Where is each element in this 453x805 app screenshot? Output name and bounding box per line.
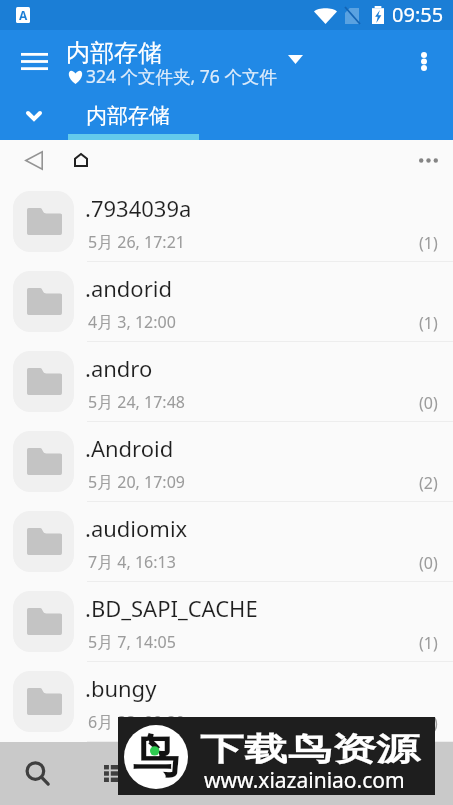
staticText: .andorid xyxy=(85,273,172,303)
staticText: 4月 3, 12:00 xyxy=(88,311,176,333)
staticText: .7934039a xyxy=(85,193,192,223)
staticText: A xyxy=(19,7,28,23)
button[interactable]: .audiomix xyxy=(0,501,453,581)
button[interactable]: .BD_SAPI_CACHE xyxy=(0,581,453,661)
staticText: (1) xyxy=(419,312,438,334)
staticText: 5月 24, 17:48 xyxy=(88,391,185,413)
button[interactable]: More options xyxy=(404,41,444,81)
staticText: (1) xyxy=(419,712,438,734)
button[interactable]: .andorid xyxy=(0,261,453,341)
button[interactable]: Navigation menu xyxy=(4,39,65,83)
button[interactable]: Choose storage xyxy=(280,44,310,74)
button[interactable]: View mode xyxy=(95,757,129,789)
button[interactable]: Collapse path xyxy=(12,96,56,136)
staticText: 下载鸟资源 xyxy=(200,729,420,769)
staticText: (0) xyxy=(419,552,438,574)
staticText: 鸟 xyxy=(133,728,179,786)
staticText: 内部存储 xyxy=(66,38,162,68)
button[interactable]: 内部存储 xyxy=(68,100,200,141)
button[interactable]: .Android xyxy=(0,421,453,501)
staticText: .BD_SAPI_CACHE xyxy=(85,593,258,623)
staticText: 内部存储 xyxy=(86,103,170,129)
staticText: 7月 4, 16:13 xyxy=(88,551,176,573)
button[interactable]: Search xyxy=(14,750,66,802)
staticText: .andro xyxy=(85,353,153,383)
staticText: .Android xyxy=(85,433,174,463)
staticText: 324 个文件夹, 76 个文件 xyxy=(86,64,277,88)
staticText: .bungy xyxy=(85,673,157,703)
staticText: 5月 26, 17:21 xyxy=(88,231,185,253)
staticText: 09:55 xyxy=(392,1,444,28)
staticText: (1) xyxy=(419,632,438,654)
button[interactable]: Path options xyxy=(408,141,448,181)
button[interactable]: Home xyxy=(62,141,100,181)
button[interactable]: .andro xyxy=(0,341,453,421)
staticText: (2) xyxy=(419,472,438,494)
staticText: 5月 7, 14:05 xyxy=(88,631,176,653)
button[interactable]: Back xyxy=(5,141,62,181)
staticText: 5月 20, 17:09 xyxy=(88,471,185,493)
button[interactable]: .bungy xyxy=(0,661,453,741)
button[interactable]: .7934039a xyxy=(0,181,453,261)
staticText: www.xiazainiao.com xyxy=(204,766,405,795)
staticText: 6月 23, 09:20 xyxy=(88,711,185,733)
staticText: (1) xyxy=(419,232,438,254)
staticText: .audiomix xyxy=(85,513,188,543)
staticText: (0) xyxy=(419,392,438,414)
